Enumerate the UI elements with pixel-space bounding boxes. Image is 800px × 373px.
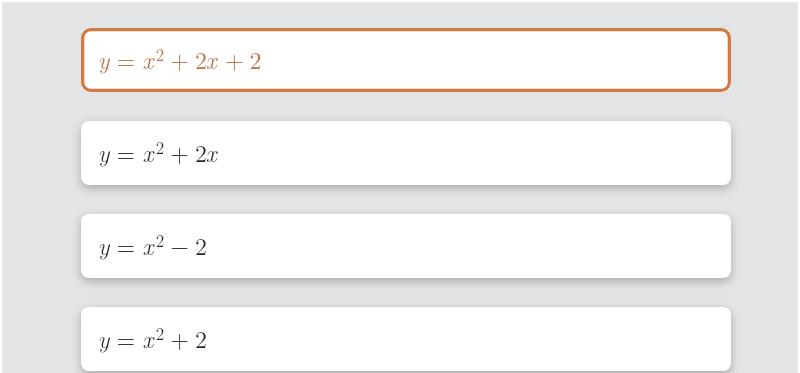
button[interactable]: y = x² + 2x + 2 (81, 28, 731, 92)
button[interactable]: y = x² − 2 (81, 214, 731, 278)
button[interactable]: y = x² + 2 (81, 307, 731, 371)
button[interactable]: y = x² + 2x (81, 121, 731, 185)
